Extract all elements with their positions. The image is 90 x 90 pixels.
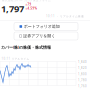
staticText: ポートフォリオ追加 bbox=[24, 24, 60, 29]
staticText: 1,797 bbox=[1, 2, 24, 15]
staticText: 株式会社カバー 5253 東証プライム bbox=[2, 0, 51, 2]
staticText: 1,800 bbox=[78, 72, 87, 76]
staticText: 10:11 リアルタイム bbox=[1, 57, 29, 60]
button[interactable]: ポートフォリオ追加 bbox=[14, 22, 78, 30]
staticText: 証券アプリを開く bbox=[23, 33, 55, 38]
staticText: カバー(株)の株価・株式情報 bbox=[1, 44, 51, 50]
staticText: +4.59% bbox=[25, 7, 36, 10]
staticText: 1,820 bbox=[78, 66, 87, 70]
button[interactable]: 証券アプリを開く bbox=[14, 32, 78, 40]
staticText: 1,780 bbox=[78, 78, 87, 82]
staticText: +79 bbox=[25, 3, 31, 6]
staticText: 1,840 bbox=[78, 60, 87, 64]
staticText: 10:11 ・ リアルタイム株価 bbox=[46, 14, 84, 18]
staticText: 1,760 bbox=[78, 84, 87, 88]
